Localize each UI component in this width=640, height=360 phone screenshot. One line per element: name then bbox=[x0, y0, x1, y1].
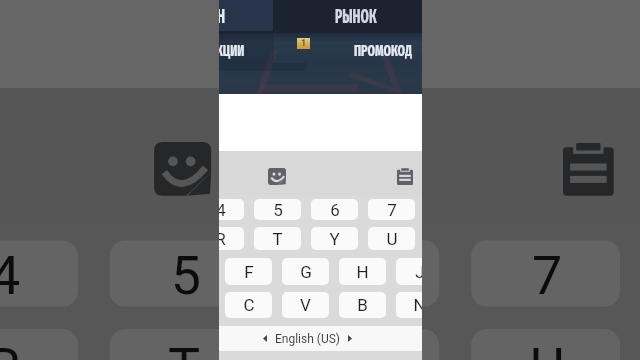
staticText: 7 bbox=[531, 243, 563, 307]
staticText: B bbox=[357, 295, 368, 315]
staticText: 7 bbox=[387, 200, 397, 220]
staticText: Н bbox=[219, 5, 225, 28]
button[interactable]: C bbox=[225, 292, 272, 318]
staticText: РЫНОК bbox=[335, 5, 377, 28]
button[interactable]: 7 bbox=[368, 199, 415, 220]
button[interactable]: R bbox=[0, 329, 78, 360]
staticText: R bbox=[219, 229, 226, 249]
button[interactable]: Y bbox=[290, 329, 439, 360]
staticText: U bbox=[528, 335, 566, 360]
staticText: English (US) bbox=[275, 332, 340, 346]
staticText: N bbox=[413, 295, 422, 315]
button[interactable]: 7 bbox=[471, 240, 620, 307]
staticText: ПРОМОКОД bbox=[354, 40, 412, 60]
staticText: 1 bbox=[301, 38, 307, 49]
staticText: Y bbox=[329, 229, 340, 249]
staticText: Y bbox=[347, 335, 382, 360]
staticText: V bbox=[300, 295, 311, 315]
button[interactable]: V bbox=[282, 292, 329, 318]
staticText: T bbox=[272, 229, 283, 249]
button[interactable]: J bbox=[396, 258, 422, 285]
button[interactable]: 6 bbox=[290, 240, 439, 307]
button[interactable]: F bbox=[225, 258, 272, 285]
staticText: 6 bbox=[330, 200, 340, 220]
button[interactable]: T bbox=[110, 329, 259, 360]
staticText: 5 bbox=[170, 243, 202, 307]
button[interactable]: Clipboard bbox=[547, 129, 630, 205]
button[interactable]: Clipboard bbox=[392, 164, 418, 188]
staticText: H bbox=[356, 262, 369, 282]
staticText: 4 bbox=[0, 243, 21, 307]
staticText: J bbox=[415, 262, 422, 282]
staticText: T bbox=[167, 335, 202, 360]
staticText: C bbox=[243, 295, 255, 315]
button[interactable]: Stickers bbox=[141, 129, 224, 205]
button[interactable]: H bbox=[339, 258, 386, 285]
button[interactable]: N bbox=[396, 292, 422, 318]
staticText: G bbox=[300, 262, 312, 282]
staticText: 6 bbox=[351, 243, 382, 307]
button[interactable]: Y bbox=[311, 227, 358, 250]
button[interactable]: 6 bbox=[311, 199, 358, 220]
button[interactable]: G bbox=[282, 258, 329, 285]
staticText: КЦИИ bbox=[219, 40, 245, 60]
button[interactable]: Stickers bbox=[264, 164, 290, 188]
button[interactable]: T bbox=[254, 227, 301, 250]
button[interactable]: B bbox=[339, 292, 386, 318]
staticText: U bbox=[386, 229, 398, 249]
button[interactable]: U bbox=[368, 227, 415, 250]
button[interactable]: English (US) bbox=[263, 326, 352, 351]
button[interactable]: 4 bbox=[0, 240, 78, 307]
button[interactable]: U bbox=[471, 329, 620, 360]
button[interactable]: 5 bbox=[110, 240, 259, 307]
staticText: F bbox=[244, 262, 254, 282]
button[interactable]: R bbox=[219, 227, 244, 250]
staticText: R bbox=[0, 335, 21, 360]
staticText: 5 bbox=[273, 200, 283, 220]
button[interactable]: 4 bbox=[219, 199, 244, 220]
staticText: 4 bbox=[219, 200, 226, 220]
button[interactable]: 5 bbox=[254, 199, 301, 220]
